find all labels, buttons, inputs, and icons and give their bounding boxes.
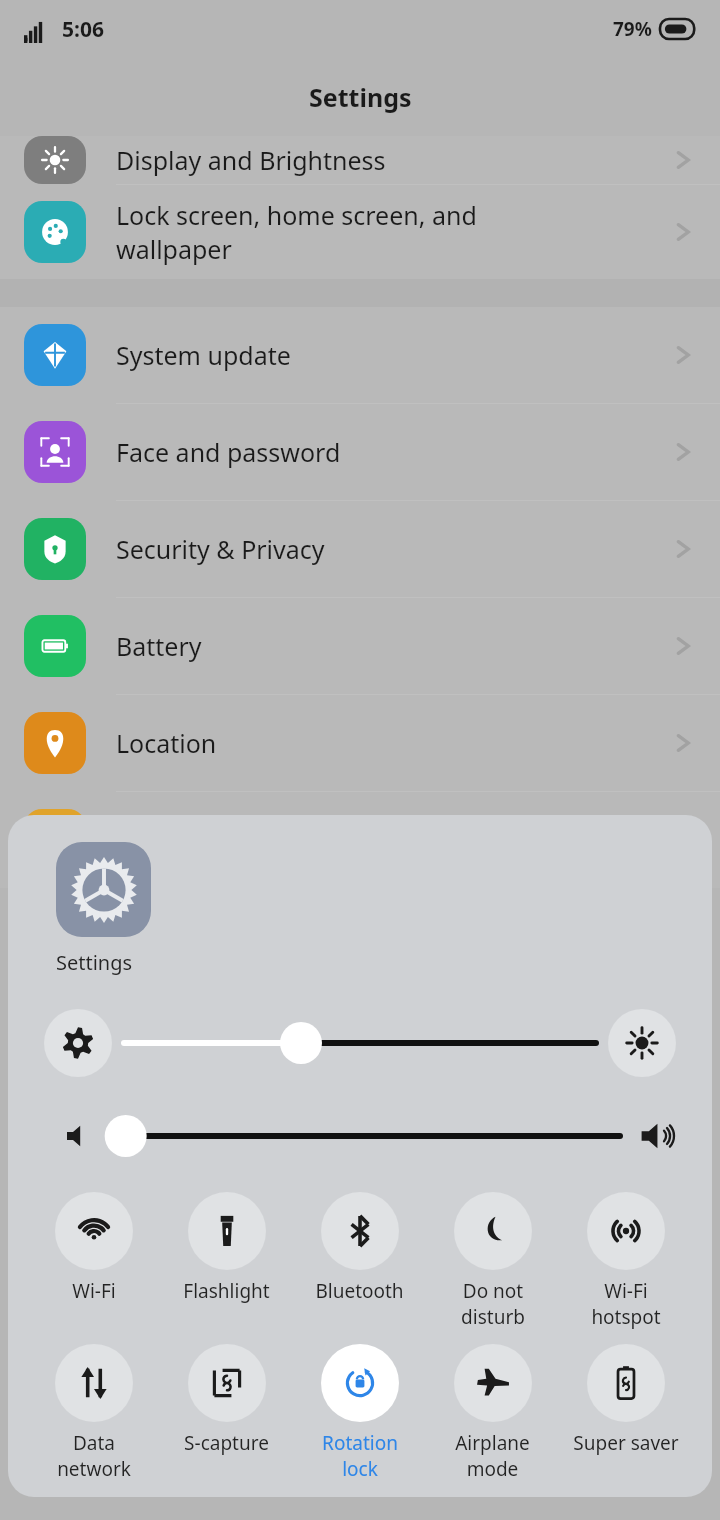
button[interactable]: Face and password [0, 404, 720, 500]
button[interactable]: Mute [60, 1117, 98, 1155]
button[interactable]: Volume settings [634, 1114, 678, 1158]
button[interactable]: Battery [0, 598, 720, 694]
button[interactable]: Contacts [0, 792, 720, 888]
staticText: Location [116, 726, 670, 760]
staticText: Settings [56, 949, 133, 976]
staticText: Settings [309, 80, 412, 114]
button[interactable]: Display settings [44, 1009, 112, 1077]
staticText: 5:06 [62, 15, 104, 44]
staticText: Bluetooth [315, 1278, 404, 1304]
staticText: Data network [57, 1430, 131, 1482]
button[interactable]: Data network [28, 1340, 160, 1486]
button[interactable]: Super saver [559, 1340, 692, 1460]
staticText: Do not disturb [461, 1278, 525, 1330]
button[interactable]: Airplane mode [426, 1340, 559, 1486]
button[interactable]: Bluetooth [293, 1188, 426, 1308]
staticText: Contacts [116, 823, 670, 857]
button[interactable]: Auto brightness [608, 1009, 676, 1077]
staticText: System update [116, 338, 670, 372]
staticText: Rotation lock [322, 1430, 398, 1482]
button[interactable]: System update [0, 307, 720, 403]
staticText: Lock screen, home screen, and wallpaper [116, 198, 670, 266]
staticText: Display and Brightness [116, 143, 670, 177]
button[interactable]: Location [0, 695, 720, 791]
staticText: S-capture [184, 1430, 269, 1456]
button[interactable]: Rotation lock [293, 1340, 426, 1486]
staticText: Security & Privacy [116, 532, 670, 566]
button[interactable]: Wi-Fi [28, 1188, 160, 1308]
button[interactable]: Do not disturb [426, 1188, 559, 1334]
button[interactable]: Security & Privacy [0, 501, 720, 597]
button[interactable]: Lock screen, home screen, and wallpaper [0, 185, 720, 279]
staticText: Wi-Fi [72, 1278, 116, 1304]
staticText: Wi-Fi hotspot [591, 1278, 661, 1330]
staticText: Super saver [573, 1430, 679, 1456]
button[interactable]: Flashlight [160, 1188, 293, 1308]
staticText: Face and password [116, 435, 670, 469]
button[interactable]: Settings app [56, 842, 151, 937]
button[interactable]: Wi-Fi hotspot [559, 1188, 692, 1334]
staticText: Airplane mode [455, 1430, 530, 1482]
button[interactable]: S-capture [160, 1340, 293, 1460]
staticText: Battery [116, 629, 670, 663]
staticText: 79% [613, 16, 652, 42]
staticText: Flashlight [183, 1278, 270, 1304]
